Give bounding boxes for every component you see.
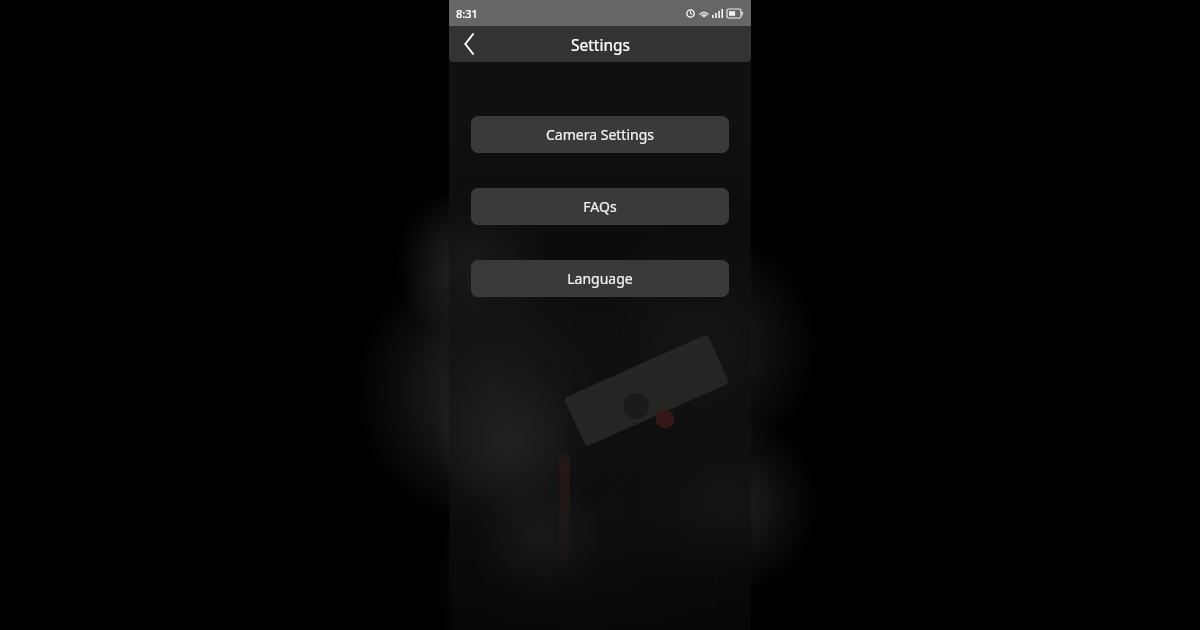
button[interactable]: Language — [471, 260, 729, 297]
staticText: FAQs — [583, 197, 617, 216]
button[interactable]: Back — [449, 26, 489, 62]
staticText: Camera Settings — [546, 125, 654, 144]
staticText: Settings — [571, 34, 630, 55]
button[interactable]: Camera Settings — [471, 116, 729, 153]
staticText: Language — [567, 269, 633, 288]
button[interactable]: FAQs — [471, 188, 729, 225]
staticText: 8:31 — [456, 6, 478, 21]
